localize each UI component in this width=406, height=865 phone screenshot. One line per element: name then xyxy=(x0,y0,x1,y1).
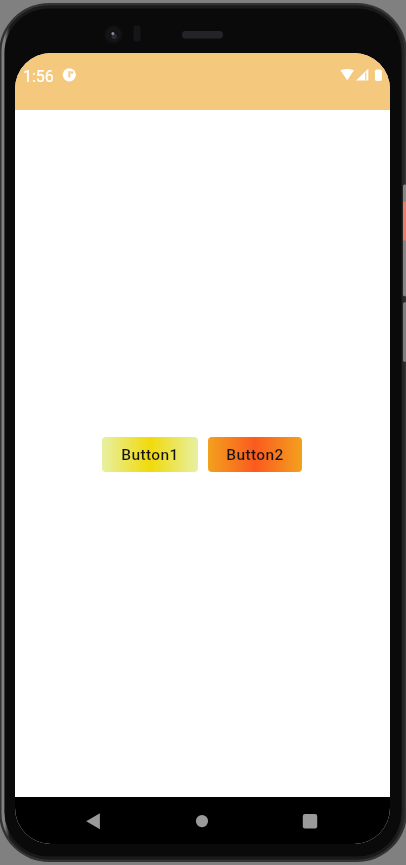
staticText: 1:56 xyxy=(23,67,54,86)
staticText: Button1 xyxy=(121,446,179,464)
button[interactable]: Back xyxy=(69,797,117,844)
button[interactable]: Button2 xyxy=(208,437,302,472)
staticText: Button2 xyxy=(226,446,284,464)
button[interactable]: Recent apps xyxy=(286,797,334,844)
button[interactable]: Button1 xyxy=(102,437,198,472)
button[interactable]: Home xyxy=(178,797,226,844)
